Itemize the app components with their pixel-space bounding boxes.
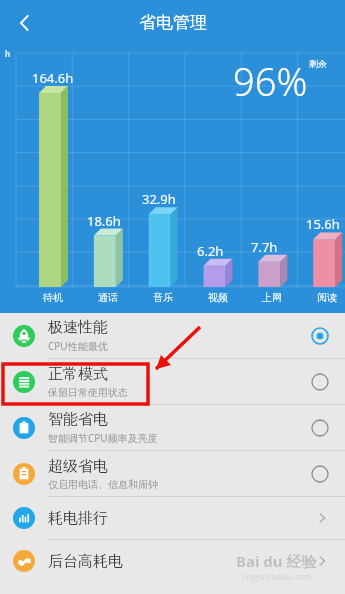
button[interactable]: 正常模式 — [0, 359, 345, 404]
staticText: 剩余 — [309, 58, 327, 69]
button[interactable]: 耗电排行 — [0, 497, 345, 539]
staticText: 仅启用电话、信息和闹钟 — [48, 478, 158, 491]
staticText: 15.6h — [306, 215, 340, 233]
staticText: 96% — [233, 55, 308, 107]
button[interactable]: 智能省电 — [0, 405, 345, 450]
staticText: 省电管理 — [139, 12, 207, 33]
button[interactable]: 超级省电 — [0, 451, 345, 496]
staticText: 智能省电 — [48, 410, 108, 429]
staticText: 超级省电 — [48, 457, 108, 476]
staticText: CPU性能最优 — [48, 339, 108, 353]
staticText: 后台高耗电 — [48, 552, 315, 571]
staticText: 耗电排行 — [48, 509, 315, 528]
staticText: 阅读 — [310, 291, 344, 304]
staticText: 视频 — [201, 291, 235, 304]
staticText: 6.2h — [197, 242, 224, 260]
staticText: h — [5, 48, 11, 59]
button[interactable]: 后台高耗电 — [0, 540, 345, 582]
staticText: 18.6h — [87, 212, 121, 230]
staticText: 7.7h — [251, 238, 278, 256]
staticText: jingyan.baidu.com — [242, 571, 312, 582]
staticText: 上网 — [255, 291, 289, 304]
staticText: 通话 — [91, 291, 125, 304]
staticText: 164.6h — [32, 69, 74, 87]
staticText: 智能调节CPU频率及亮度 — [48, 431, 158, 445]
button[interactable]: Back — [8, 6, 42, 40]
staticText: 保留日常使用状态 — [48, 386, 128, 399]
button[interactable]: 极速性能 — [0, 313, 345, 358]
staticText: Bai du 经验 — [236, 551, 317, 571]
staticText: 极速性能 — [48, 318, 108, 337]
staticText: 音乐 — [146, 291, 180, 304]
staticText: 待机 — [36, 291, 70, 304]
staticText: 正常模式 — [48, 365, 108, 384]
staticText: 32.9h — [142, 190, 176, 208]
